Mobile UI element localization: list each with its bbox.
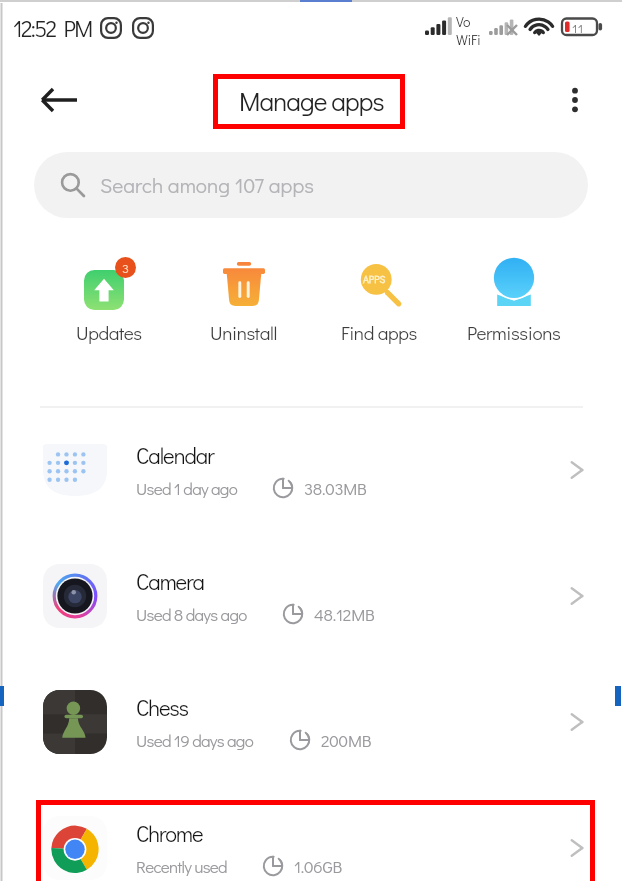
staticText: Manage apps	[239, 84, 384, 118]
staticText: Uninstall	[210, 320, 277, 345]
button[interactable]: More options	[550, 75, 600, 125]
staticText: Chess	[136, 693, 189, 722]
staticText: 11	[572, 19, 584, 36]
button[interactable]: Calendar	[0, 407, 622, 533]
staticText: Camera	[136, 567, 204, 596]
button[interactable]: APPS	[311, 258, 446, 345]
staticText: Used 19 days ago	[136, 729, 254, 751]
staticText: APPS	[363, 273, 386, 286]
staticText: Updates	[76, 320, 142, 345]
button[interactable]: Uninstall	[176, 258, 311, 345]
button[interactable]: Chess	[0, 659, 622, 785]
staticText: 48.12MB	[314, 603, 375, 625]
button[interactable]: 3	[41, 258, 176, 345]
button[interactable]: Back	[33, 74, 85, 126]
staticText: WiFi	[456, 30, 481, 48]
button[interactable]: Chrome	[0, 785, 622, 881]
staticText: 3	[122, 259, 129, 276]
staticText: Permissions	[467, 320, 561, 345]
staticText: 38.03MB	[304, 477, 367, 499]
staticText: Find apps	[341, 320, 417, 345]
staticText: Used 8 days ago	[136, 603, 247, 625]
staticText: Search among 107 apps	[100, 171, 314, 199]
staticText: Calendar	[136, 441, 214, 470]
button[interactable]: Manage apps	[239, 84, 384, 118]
staticText: 12:52 PM	[13, 13, 92, 43]
staticText: Vo	[456, 12, 471, 30]
staticText: Chrome	[136, 819, 203, 848]
staticText: Used 1 day ago	[136, 477, 237, 499]
button[interactable]: Camera	[0, 533, 622, 659]
staticText: Recently used	[136, 855, 227, 877]
button[interactable]: Search among 107 apps	[34, 152, 588, 218]
staticText: 1.06GB	[294, 855, 343, 877]
staticText: 200MB	[321, 729, 372, 751]
button[interactable]: Permissions	[446, 258, 581, 345]
